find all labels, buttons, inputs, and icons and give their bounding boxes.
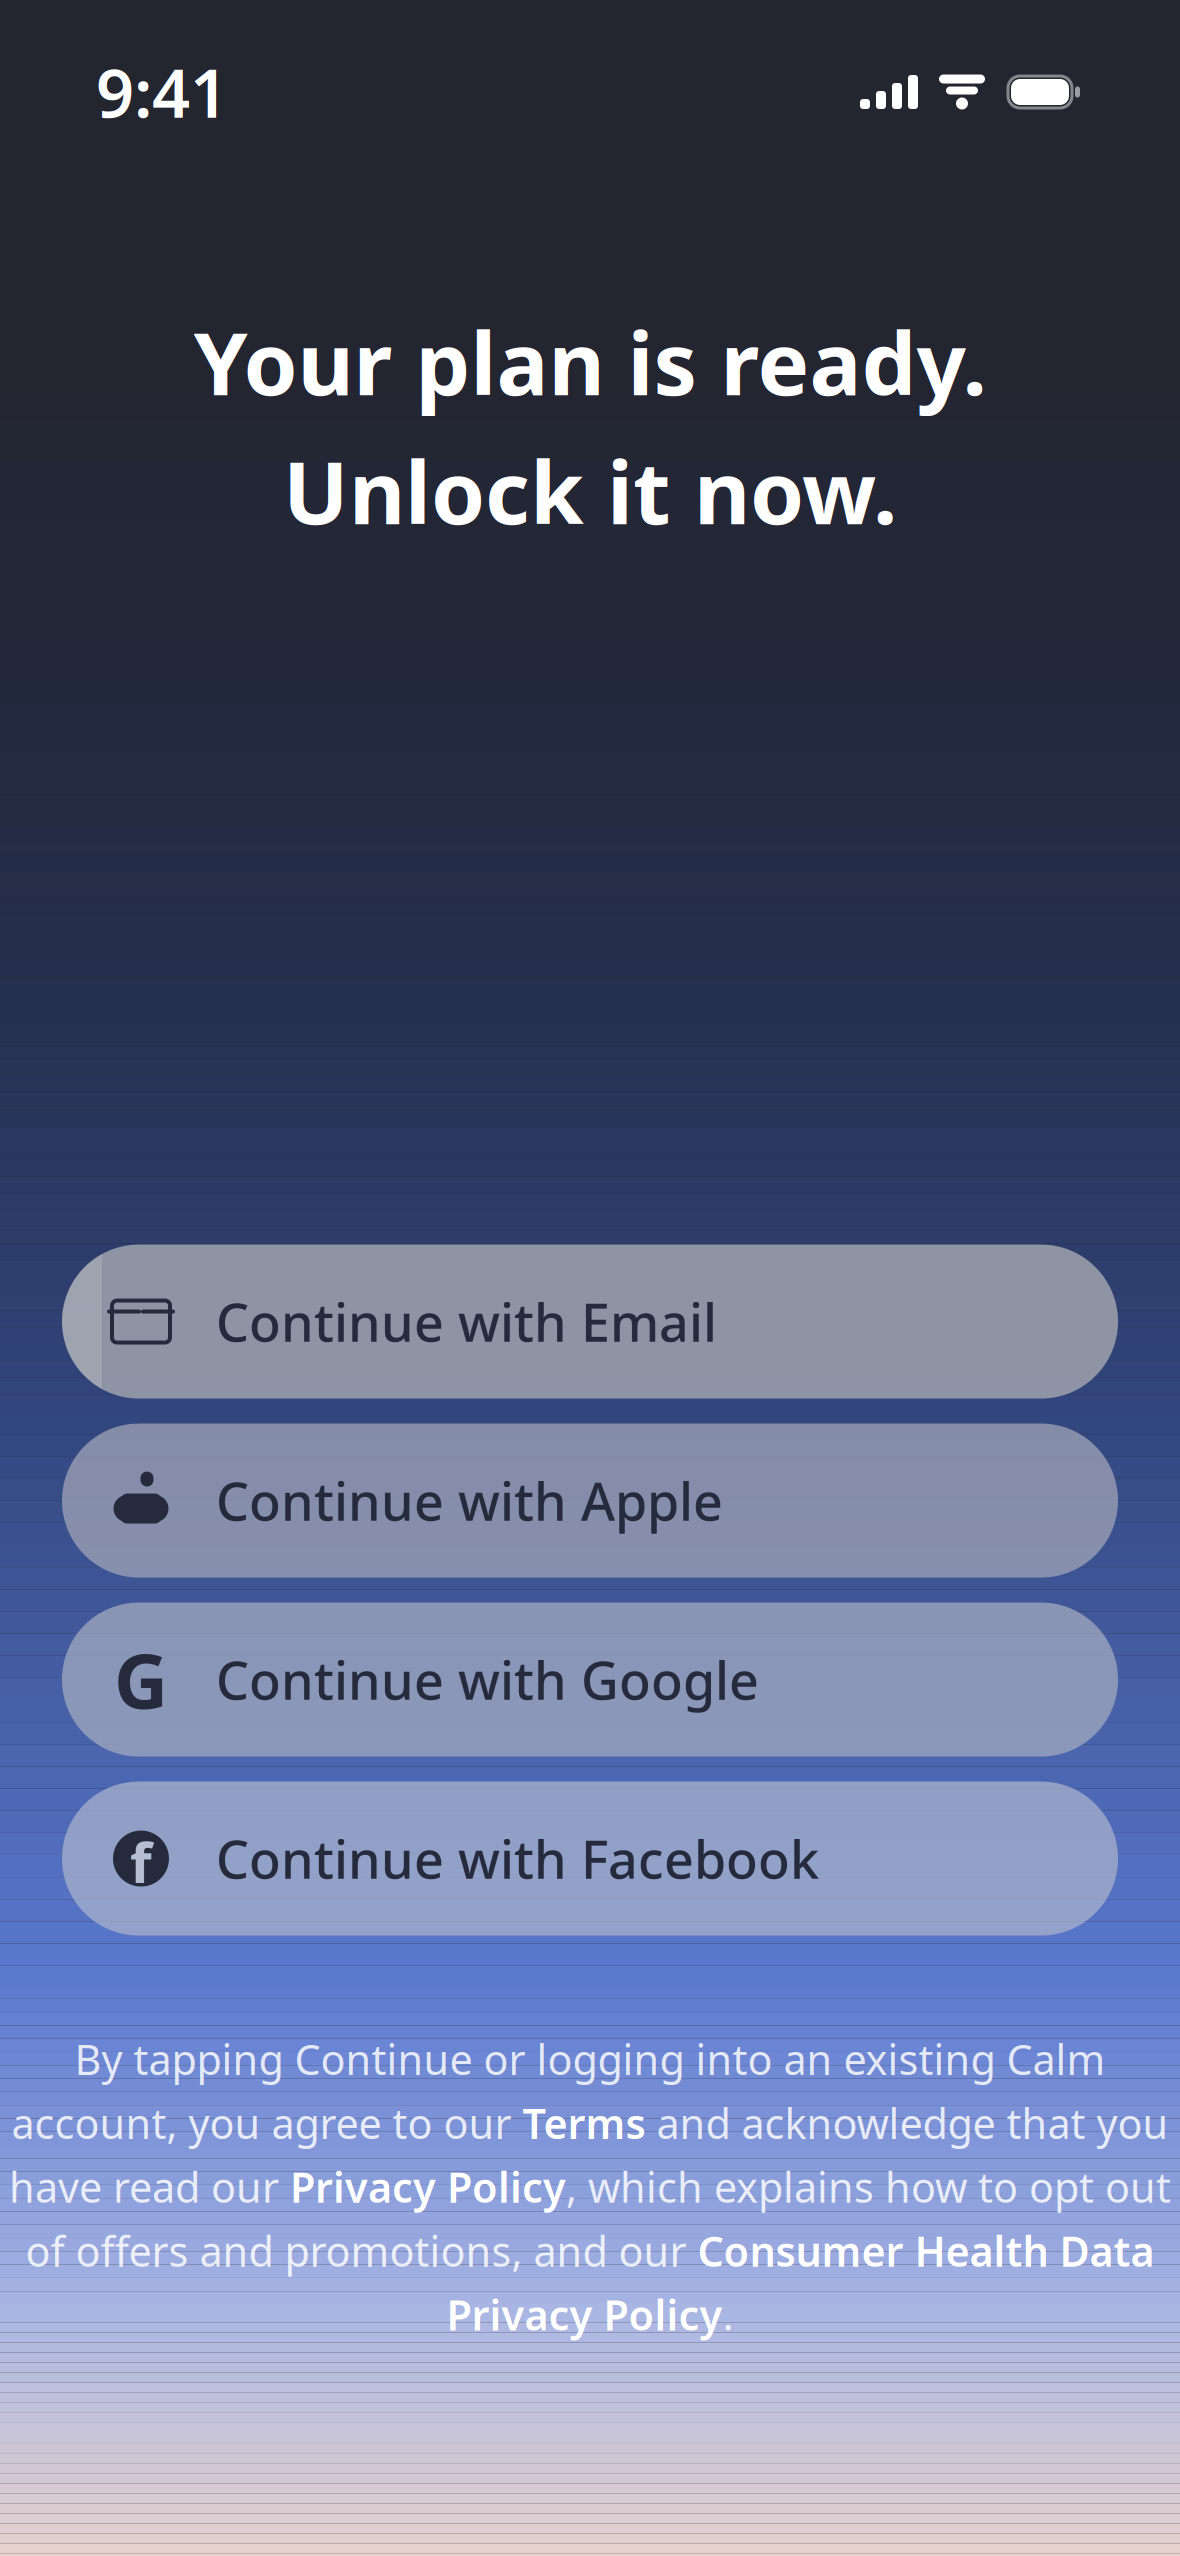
staticText: Continue with Facebook (216, 1824, 819, 1893)
staticText: Privacy Policy (446, 2287, 722, 2342)
staticText: Continue with Email (216, 1287, 717, 1356)
staticText: have read our (9, 2159, 290, 2214)
staticText: f (130, 1824, 152, 1899)
button[interactable]: f (62, 1782, 1118, 1936)
button[interactable]: G (62, 1603, 1118, 1757)
button[interactable]: Continue with Apple (62, 1424, 1118, 1578)
staticText: Privacy Policy (290, 2159, 566, 2214)
staticText: G (114, 1630, 168, 1729)
staticText: of offers and promotions, and our (25, 2223, 697, 2278)
staticText: and acknowledge that you (645, 2095, 1168, 2150)
button[interactable]: Continue with Email (62, 1245, 1118, 1399)
staticText: Continue with Apple (216, 1466, 723, 1535)
staticText: Consumer Health Data (697, 2223, 1154, 2278)
staticText: account, you agree to our (11, 2095, 522, 2150)
staticText: Unlock it now. (283, 433, 897, 548)
staticText: . (722, 2287, 733, 2342)
staticText: Terms (522, 2095, 645, 2150)
staticText: Your plan is ready. (193, 304, 986, 419)
staticText: 9:41 (96, 48, 228, 136)
staticText: , which explains how to opt out (566, 2159, 1171, 2214)
staticText: Continue with Google (216, 1645, 759, 1714)
staticText: By tapping Continue or logging into an e… (74, 2032, 1105, 2086)
